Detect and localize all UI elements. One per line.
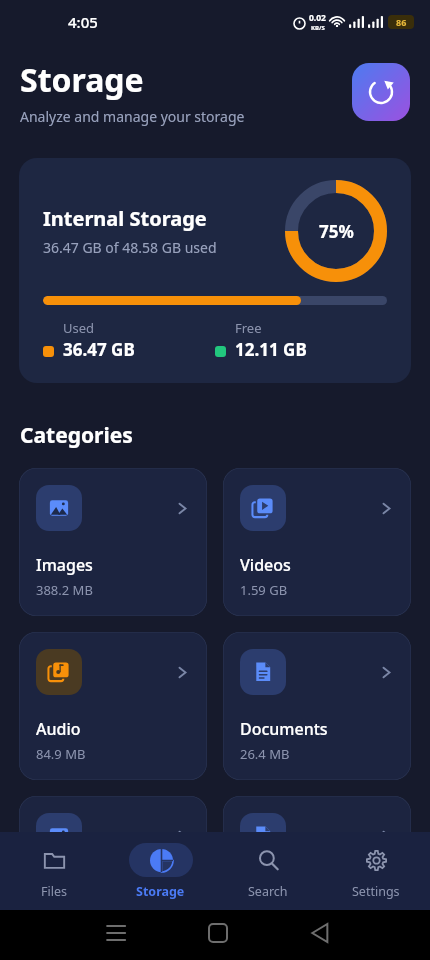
staticText: 26.4 MB (240, 745, 290, 763)
staticText: Categories (20, 421, 133, 450)
staticText: 86 (396, 16, 407, 28)
staticText: Audio (36, 718, 81, 740)
staticText: 1.59 GB (240, 581, 288, 599)
staticText: Storage (136, 883, 185, 900)
staticText: Search (248, 883, 288, 900)
staticText: Files (41, 883, 67, 900)
staticText: 75% (319, 220, 354, 243)
button[interactable]: Other (223, 796, 411, 944)
button[interactable]: Images (19, 468, 207, 616)
staticText: 4:05 (68, 12, 98, 32)
button[interactable]: Documents (223, 632, 411, 780)
staticText: Other (240, 882, 285, 904)
staticText: 84.9 MB (36, 745, 86, 763)
button[interactable]: Refresh (352, 63, 410, 121)
staticText: 36.47 GB of 48.58 GB used (43, 238, 217, 257)
staticText: Storage (20, 58, 144, 102)
staticText: 36.47 GB (63, 338, 135, 361)
staticText: Free (235, 319, 262, 337)
button[interactable]: Settings (322, 832, 430, 910)
staticText: Settings (352, 883, 400, 900)
button[interactable]: Apps (19, 796, 207, 944)
staticText: Apps (36, 882, 75, 904)
button[interactable]: Audio (19, 632, 207, 780)
staticText: Documents (240, 718, 328, 740)
button[interactable]: Storage (107, 832, 214, 910)
button[interactable]: Search (214, 832, 322, 910)
button[interactable]: Videos (223, 468, 411, 616)
staticText: Used (63, 319, 95, 337)
staticText: Analyze and manage your storage (20, 107, 245, 126)
button[interactable]: Internal Storage (19, 158, 411, 383)
staticText: 388.2 MB (36, 581, 93, 599)
button[interactable]: Files (0, 832, 107, 910)
staticText: 0.02 (309, 12, 326, 24)
staticText: Images (36, 554, 93, 576)
staticText: Videos (240, 554, 291, 576)
staticText: KB/S (311, 24, 325, 32)
staticText: 12.11 GB (235, 338, 307, 361)
staticText: Internal Storage (43, 205, 207, 232)
